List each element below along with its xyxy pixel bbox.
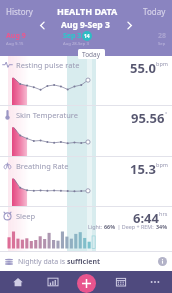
staticText: ° [165,110,168,117]
staticText: Today [143,6,166,17]
staticText: sufficient [67,257,101,267]
staticText: 55.0 [130,59,156,77]
button[interactable]: Next week [123,19,136,32]
staticText: HEALTH DATA [57,5,118,17]
staticText: Aug 9 [6,31,26,41]
staticText: Light: [88,223,104,230]
staticText: History [6,6,33,17]
staticText: Sep [158,41,166,47]
staticText: bpm [156,60,168,67]
button[interactable]: Skin Temperature [0,106,172,156]
button[interactable]: Breathing Rate [0,157,172,206]
staticText: 34% [156,223,168,230]
button[interactable]: Previous week [36,19,49,32]
staticText: | Deep + REM: [116,223,156,230]
staticText: Resting pulse rate [16,60,80,70]
button[interactable]: Calendar [104,271,138,293]
staticText: 28 [158,31,167,41]
staticText: 6:44 [133,209,159,227]
button[interactable]: History [0,4,39,19]
staticText: Aug 28-Sep 3 [63,41,89,47]
staticText: hrs [159,210,168,217]
button[interactable]: More [138,271,172,293]
staticText: Today [82,50,101,59]
button[interactable]: Resting pulse rate [0,56,172,105]
staticText: Sleep [16,211,36,221]
staticText: 14 [84,33,90,40]
staticText: Aug 9-15 [6,41,24,47]
button[interactable]: Nightly data is [0,252,172,271]
staticText: Nightly data is [18,257,67,267]
staticText: Sep 3 [63,31,82,41]
staticText: bpm [156,161,168,168]
staticText: Aug 9-Sep 3 [61,19,110,31]
staticText: Breathing Rate [16,161,69,171]
button[interactable]: Sleep [0,207,172,251]
staticText: 15.3 [130,160,156,178]
button[interactable]: Trends [35,271,70,293]
button[interactable]: Today [78,49,105,59]
button[interactable]: Add entry [77,274,96,293]
staticText: 95.56 [131,109,165,127]
staticText: Skin Temperature [16,110,79,120]
staticText: 66% [104,223,116,230]
button[interactable]: Home [0,271,35,293]
button[interactable]: Today [137,4,172,19]
